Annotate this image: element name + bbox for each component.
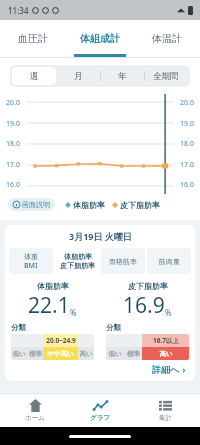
staticText: 分類 (106, 323, 121, 332)
button[interactable]: 週 (12, 67, 56, 85)
staticText: 月 (74, 71, 83, 82)
button[interactable]: ホーム (5, 396, 65, 425)
button[interactable]: 画面説明 (8, 198, 55, 211)
staticText: 19.0 (6, 119, 20, 129)
button[interactable]: 筋肉量 (147, 248, 191, 274)
staticText: 高い (159, 350, 173, 358)
staticText: % (70, 307, 77, 318)
staticText: 20.0 (180, 98, 194, 108)
staticText: 20.0~24.9 (46, 336, 76, 345)
button[interactable]: 骨格筋率 (101, 248, 145, 274)
staticText: ホーム (25, 414, 45, 422)
staticText: 22.1 (28, 291, 70, 320)
staticText: 18.0 (180, 139, 194, 149)
staticText: 17.0 (6, 160, 20, 170)
button[interactable]: 体脂肪率 (55, 248, 99, 274)
staticText: BMI (24, 261, 38, 271)
staticText: 血圧計 (18, 32, 48, 45)
staticText: 高い (79, 350, 93, 358)
staticText: 19.0 (180, 119, 194, 129)
button[interactable]: 体重 (9, 248, 53, 274)
staticText: 18.0 (6, 139, 20, 149)
staticText: 体温計 (152, 32, 182, 45)
button[interactable]: 体温計 (133, 20, 200, 57)
staticText: 低い (12, 350, 26, 358)
staticText: 骨格筋率 (109, 257, 137, 266)
staticText: 16.0 (6, 180, 20, 190)
staticText: 年 (118, 71, 127, 82)
staticText: 体脂肪率 (37, 281, 69, 291)
button[interactable]: 月 (56, 67, 100, 85)
staticText: グラフ (90, 414, 110, 422)
staticText: 皮下脂肪率 (120, 200, 160, 210)
staticText: 3月19日 火曜日 (69, 230, 132, 242)
button[interactable]: 詳細へ (152, 363, 186, 375)
button[interactable]: 集計 (135, 396, 195, 425)
staticText: 11:34 (8, 5, 29, 16)
button[interactable]: 年 (100, 67, 144, 85)
staticText: 画面説明 (22, 200, 50, 209)
staticText: 体重 (24, 252, 38, 261)
staticText: 標準 (29, 350, 42, 358)
staticText: › (180, 363, 186, 375)
button[interactable]: 血圧計 (0, 20, 66, 57)
staticText: 17.0 (180, 160, 194, 170)
staticText: 16.9 (123, 291, 165, 320)
staticText: 体脂肪率 (64, 252, 92, 261)
staticText: 体脂肪率 (73, 200, 105, 210)
staticText: 20.0 (6, 98, 20, 108)
staticText: 筋肉量 (159, 257, 180, 266)
staticText: 集計 (159, 414, 172, 422)
staticText: 週 (30, 71, 39, 82)
staticText: 全期間 (153, 71, 179, 82)
staticText: 16.7以上 (153, 336, 179, 345)
button[interactable]: グラフ (70, 396, 130, 425)
staticText: % (165, 307, 172, 318)
button[interactable]: 体組成計 (66, 20, 133, 57)
staticText: 皮下脂肪率 (60, 261, 95, 270)
staticText: 皮下脂肪率 (128, 281, 168, 291)
button[interactable]: 全期間 (144, 67, 188, 85)
staticText: やや高い (47, 350, 74, 358)
staticText: 16.0 (180, 180, 194, 190)
staticText: 詳細へ (152, 364, 180, 375)
staticText: 体組成計 (80, 32, 120, 45)
staticText: 低い (108, 350, 122, 358)
staticText: 分類 (11, 323, 26, 332)
staticText: 標準 (127, 350, 140, 358)
